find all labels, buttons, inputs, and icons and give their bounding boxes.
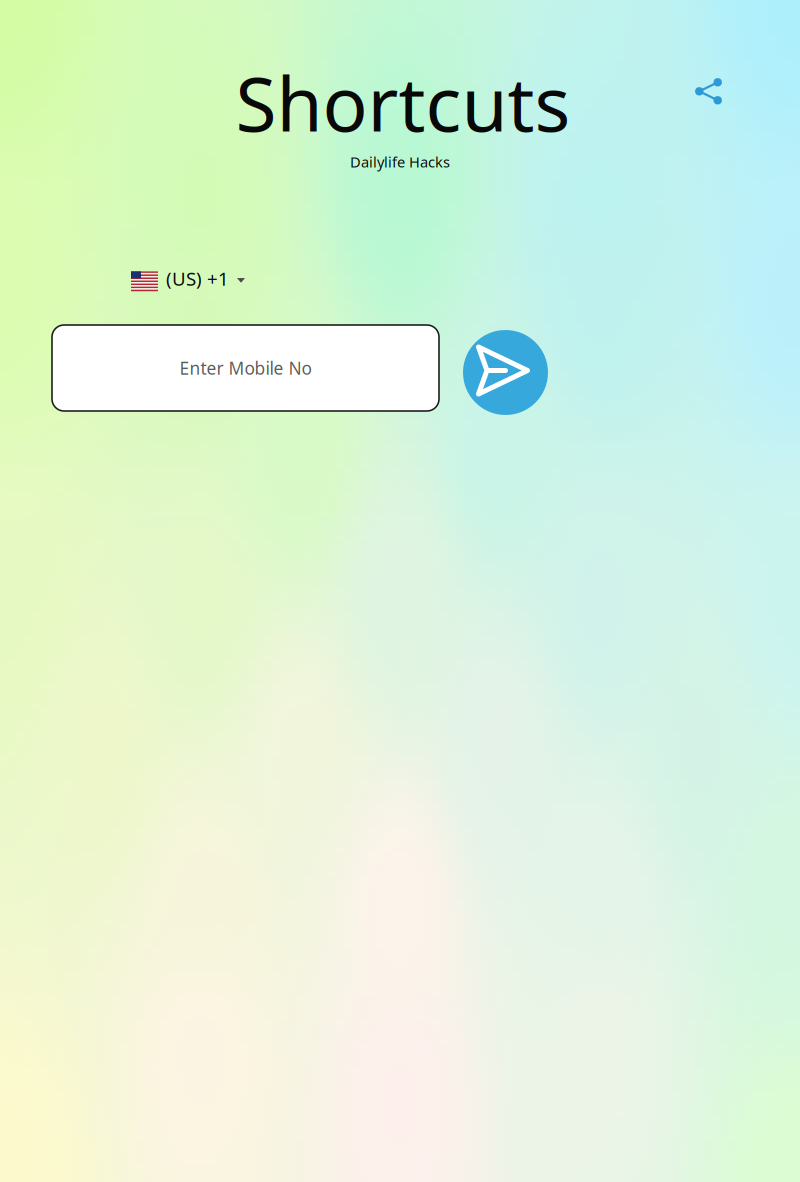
button[interactable]: Enter Mobile No — [52, 325, 439, 411]
staticText: Dailylife Hacks — [350, 152, 450, 171]
button[interactable]: Send — [463, 330, 548, 415]
button[interactable]: (US) +1 — [126, 261, 250, 296]
button[interactable]: Share — [683, 66, 734, 117]
staticText: Enter Mobile No — [179, 356, 311, 379]
staticText: Shortcuts — [235, 53, 570, 152]
staticText: (US) +1 — [166, 266, 229, 291]
